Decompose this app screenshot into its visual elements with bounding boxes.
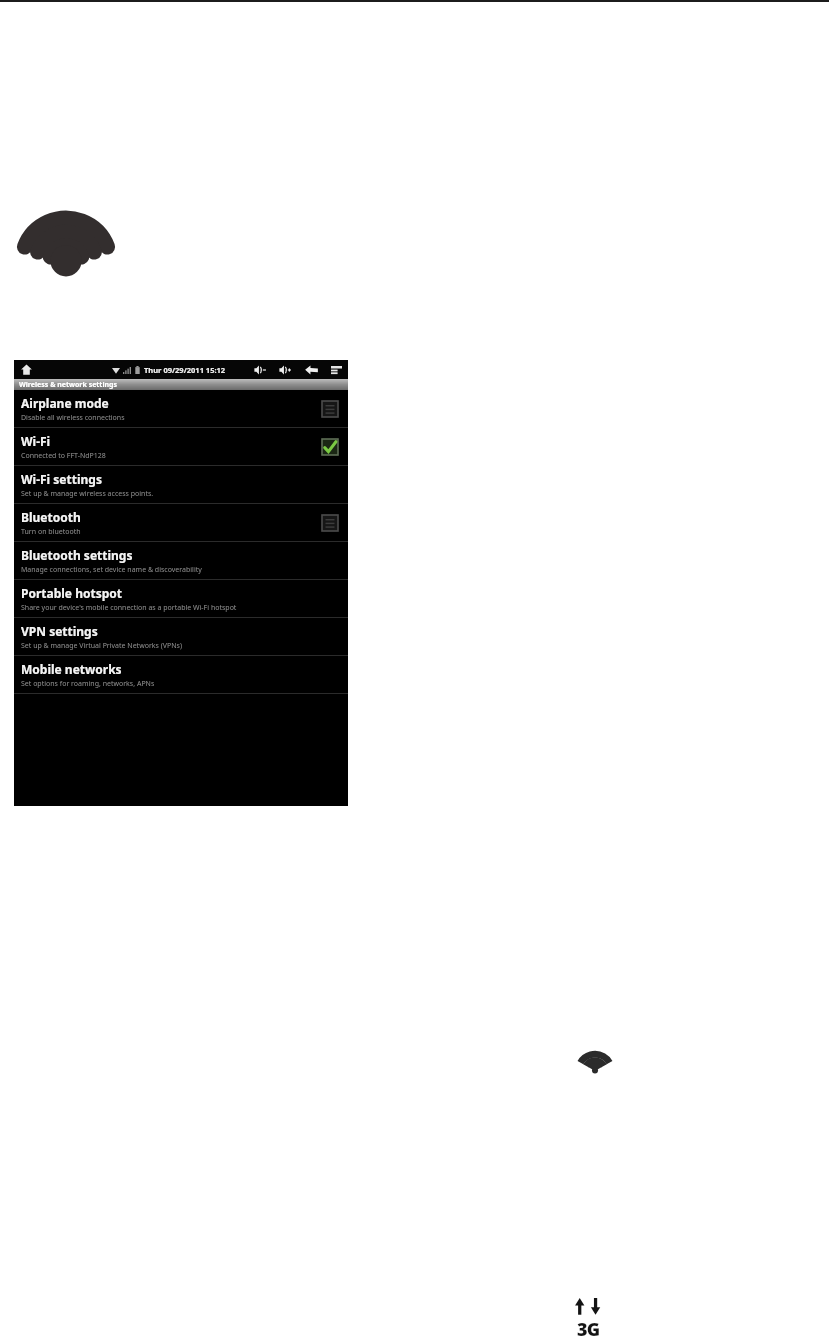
button[interactable]: Bluetooth settings [14, 542, 348, 580]
button[interactable]: Volume up [279, 365, 292, 375]
button[interactable]: Portable hotspot [14, 580, 348, 618]
staticText: Share your device's mobile connection as… [21, 603, 237, 613]
staticText: Bluetooth settings [21, 547, 133, 563]
staticText: Thur 09/29/2011 15:12 [144, 365, 226, 375]
staticText: Set options for roaming, networks, APNs [21, 679, 155, 689]
staticText: Airplane mode [21, 395, 109, 411]
staticText: Connected to FFT-NdP128 [21, 451, 106, 461]
staticText: Turn on bluetooth [21, 527, 81, 537]
button[interactable]: Volume down [254, 365, 267, 375]
staticText: Set up & manage Virtual Private Networks… [21, 641, 182, 651]
staticText: Wireless & network settings [19, 380, 117, 390]
staticText: Bluetooth [21, 509, 81, 525]
staticText: Portable hotspot [21, 585, 122, 601]
button[interactable]: Wi-Fi [14, 428, 348, 466]
button[interactable]: Wi-Fi toggle [322, 439, 338, 455]
staticText: VPN settings [21, 623, 98, 639]
button[interactable]: Airplane mode toggle [322, 401, 338, 417]
button[interactable]: Back [305, 365, 318, 375]
button[interactable]: Airplane mode [14, 390, 348, 428]
staticText: Mobile networks [21, 661, 122, 677]
button[interactable]: Mobile networks [14, 656, 348, 694]
button[interactable]: Home [21, 364, 32, 375]
staticText: Wi-Fi [21, 433, 51, 449]
staticText: Set up & manage wireless access points. [21, 489, 154, 499]
button[interactable]: VPN settings [14, 618, 348, 656]
button[interactable]: Wi-Fi settings [14, 466, 348, 504]
staticText: Wi-Fi settings [21, 471, 102, 487]
staticText: 3G [577, 1317, 600, 1340]
button[interactable]: Menu [331, 366, 342, 375]
staticText: Manage connections, set device name & di… [21, 565, 202, 575]
button[interactable]: Bluetooth [14, 504, 348, 542]
staticText: Disable all wireless connections [21, 413, 125, 423]
button[interactable]: Bluetooth toggle [322, 515, 338, 531]
